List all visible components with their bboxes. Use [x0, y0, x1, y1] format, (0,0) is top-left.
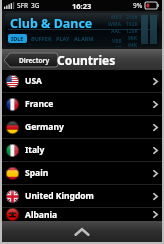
staticText: 128K: [126, 28, 138, 35]
staticText: IDLE: [11, 35, 24, 42]
button[interactable]: USA: [2, 70, 162, 92]
staticText: BUFFER: [31, 35, 52, 42]
staticText: EQ: [115, 45, 122, 47]
button[interactable]: IDLE: [11, 35, 24, 42]
staticText: WMA: [108, 21, 122, 28]
staticText: France: [25, 98, 54, 110]
button[interactable]: United Kingdom: [2, 185, 162, 207]
staticText: 256K: [126, 14, 138, 21]
staticText: Countries: [57, 52, 116, 68]
staticText: Albania: [25, 209, 58, 221]
button[interactable]: Albania: [2, 208, 162, 221]
button[interactable]: Germany: [2, 116, 162, 138]
staticText: Spain: [25, 167, 49, 179]
staticText: MP3: [111, 14, 122, 21]
staticText: SFR: [17, 1, 28, 10]
staticText: Italy: [25, 144, 45, 156]
staticText: USA: [25, 75, 42, 87]
button[interactable]: Italy: [2, 139, 162, 161]
staticText: 3G: [31, 1, 40, 10]
button[interactable]: Spain: [2, 162, 162, 184]
staticText: ALARM: [74, 35, 94, 42]
button[interactable]: Directory: [4, 53, 58, 67]
staticText: 16:23: [72, 1, 92, 11]
button[interactable]: France: [2, 93, 162, 115]
staticText: 64K: [128, 42, 138, 47]
staticText: Germany: [25, 121, 64, 133]
staticText: AAC: [111, 28, 122, 35]
staticText: Club & Dance: [10, 15, 93, 32]
staticText: United Kingdom: [25, 190, 94, 202]
staticText: PLAY: [56, 35, 70, 42]
staticText: 96K: [128, 35, 138, 42]
staticText: VBR: [112, 38, 122, 45]
staticText: 9%: [133, 1, 143, 10]
staticText: 192K: [126, 21, 138, 28]
staticText: Directory: [19, 56, 50, 65]
button[interactable]: Scroll up: [2, 221, 162, 242]
